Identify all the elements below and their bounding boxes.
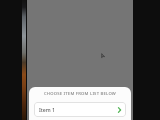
staticText: Item 1 [39, 106, 56, 113]
staticText: CHOOSE ITEM FROM LIST BELOW [29, 91, 131, 97]
other: Open Item 1 [118, 107, 121, 113]
button[interactable]: Item 1 [34, 102, 126, 117]
